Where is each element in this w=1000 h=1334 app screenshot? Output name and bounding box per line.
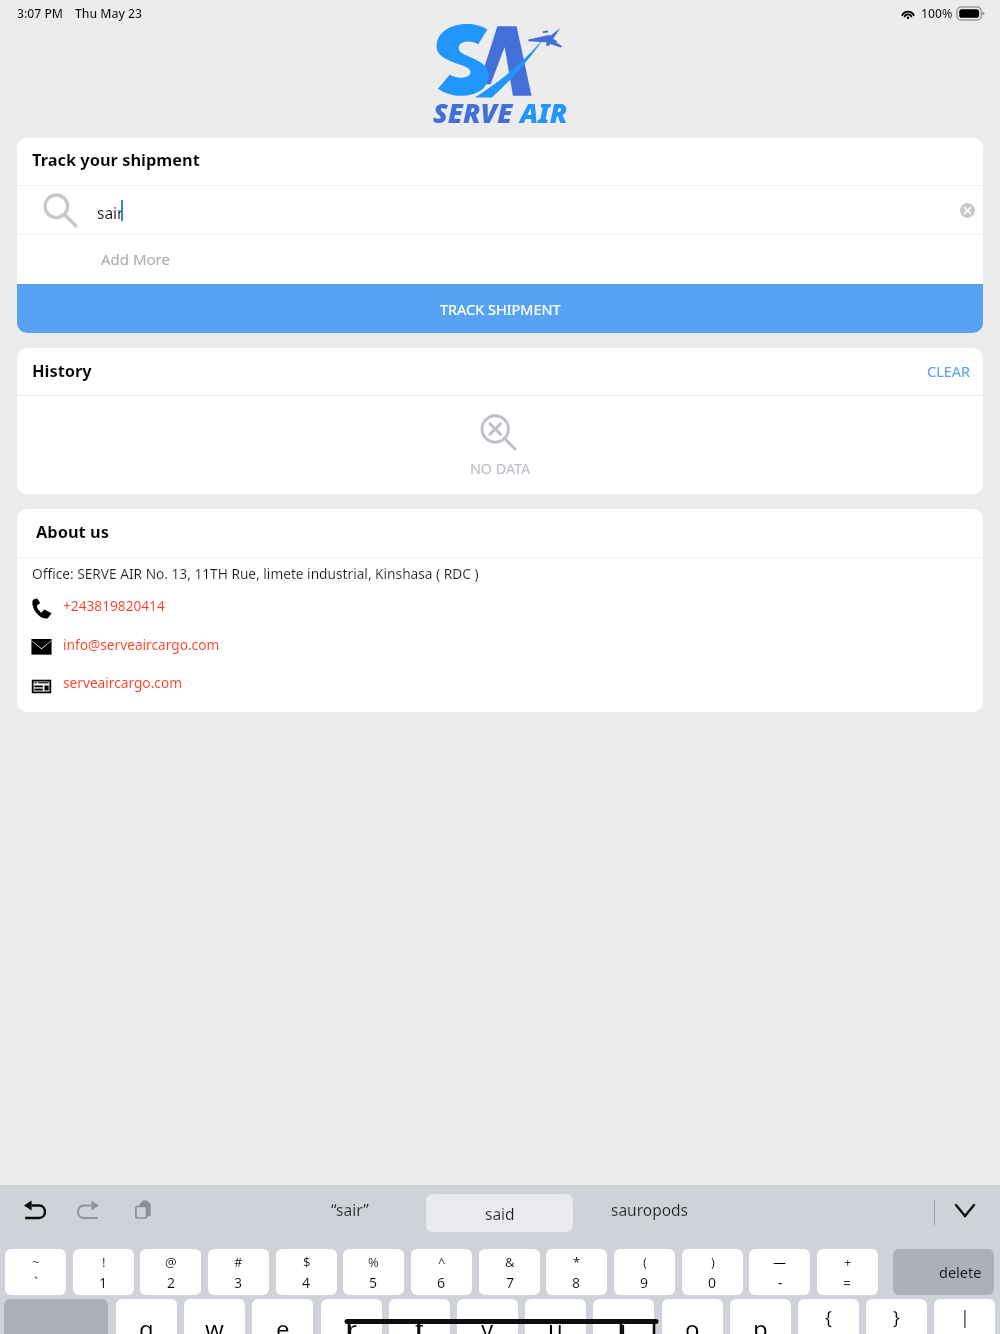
- staticText: 5: [369, 1273, 378, 1292]
- button[interactable]: !: [73, 1249, 134, 1295]
- staticText: Office: SERVE AIR No. 13, 11TH Rue, lime…: [32, 564, 479, 583]
- staticText: serveaircargo.com: [63, 673, 182, 692]
- staticText: CLEAR: [927, 361, 971, 381]
- button[interactable]: o: [662, 1299, 723, 1334]
- staticText: About us: [36, 520, 109, 542]
- staticText: AIR: [520, 94, 568, 131]
- button[interactable]: sauropods: [590, 1190, 710, 1228]
- button[interactable]: |: [934, 1299, 995, 1334]
- button[interactable]: %: [343, 1249, 404, 1295]
- button[interactable]: }: [866, 1299, 927, 1334]
- button[interactable]: “sair”: [300, 1190, 400, 1228]
- staticText: w: [205, 1312, 224, 1334]
- button[interactable]: Clear text: [955, 198, 979, 222]
- button[interactable]: $: [276, 1249, 337, 1295]
- staticText: o: [685, 1312, 700, 1334]
- staticText: u: [548, 1312, 563, 1334]
- button[interactable]: e: [252, 1299, 313, 1334]
- button[interactable]: ~: [5, 1249, 66, 1295]
- staticText: (: [643, 1253, 647, 1271]
- button[interactable]: &: [479, 1249, 540, 1295]
- staticText: p: [753, 1312, 768, 1334]
- staticText: ): [711, 1253, 715, 1271]
- button[interactable]: sair: [17, 186, 983, 234]
- staticText: i: [620, 1312, 627, 1334]
- staticText: 0: [708, 1273, 717, 1292]
- staticText: #: [234, 1253, 243, 1271]
- staticText: said: [485, 1203, 515, 1224]
- staticText: 3:07 PM: [17, 5, 64, 22]
- staticText: Thu May 23: [75, 5, 143, 22]
- staticText: 3: [234, 1273, 243, 1292]
- button[interactable]: Add More: [17, 235, 983, 284]
- staticText: 100%: [921, 5, 953, 22]
- button[interactable]: r: [321, 1299, 382, 1334]
- staticText: +243819820414: [63, 596, 165, 615]
- button[interactable]: info@serveaircargo.com: [17, 631, 983, 663]
- staticText: y: [481, 1312, 494, 1334]
- button[interactable]: CLEAR: [920, 357, 978, 385]
- staticText: `: [34, 1273, 38, 1292]
- button[interactable]: *: [546, 1249, 607, 1295]
- staticText: sair: [97, 202, 124, 223]
- button[interactable]: q: [116, 1299, 177, 1334]
- staticText: TRACK SHIPMENT: [440, 299, 561, 319]
- staticText: @: [165, 1253, 177, 1271]
- staticText: +: [844, 1253, 852, 1271]
- button[interactable]: Undo: [20, 1197, 50, 1223]
- staticText: info@serveaircargo.com: [63, 635, 220, 654]
- button[interactable]: t: [389, 1299, 450, 1334]
- button[interactable]: serveaircargo.com: [17, 670, 983, 702]
- button[interactable]: +243819820414: [17, 593, 983, 625]
- staticText: =: [843, 1273, 852, 1292]
- button[interactable]: Redo: [72, 1197, 102, 1223]
- button[interactable]: delete: [893, 1249, 994, 1295]
- button[interactable]: said: [426, 1194, 573, 1232]
- button[interactable]: Paste: [128, 1197, 158, 1223]
- button[interactable]: ^: [411, 1249, 472, 1295]
- staticText: delete: [939, 1262, 982, 1282]
- staticText: Track your shipment: [32, 148, 200, 170]
- staticText: {: [825, 1305, 832, 1330]
- staticText: -: [778, 1273, 783, 1292]
- staticText: $: [303, 1253, 311, 1271]
- staticText: NO DATA: [470, 459, 531, 478]
- staticText: ^: [438, 1253, 446, 1271]
- button[interactable]: ): [682, 1249, 743, 1295]
- button[interactable]: —: [749, 1249, 810, 1295]
- staticText: SERVE: [433, 94, 520, 131]
- staticText: }: [893, 1305, 900, 1330]
- button[interactable]: (: [614, 1249, 675, 1295]
- button[interactable]: #: [208, 1249, 269, 1295]
- staticText: History: [32, 359, 92, 381]
- staticText: sauropods: [611, 1199, 689, 1220]
- staticText: 8: [572, 1273, 581, 1292]
- staticText: !: [102, 1253, 106, 1271]
- staticText: %: [368, 1253, 379, 1271]
- button[interactable]: i: [593, 1299, 654, 1334]
- staticText: q: [139, 1312, 154, 1334]
- button[interactable]: @: [140, 1249, 201, 1295]
- button[interactable]: y: [457, 1299, 518, 1334]
- staticText: *: [573, 1253, 581, 1271]
- staticText: —: [773, 1253, 787, 1271]
- staticText: e: [276, 1312, 290, 1334]
- staticText: 6: [437, 1273, 446, 1292]
- staticText: t: [415, 1312, 424, 1334]
- button[interactable]: w: [184, 1299, 245, 1334]
- staticText: 2: [167, 1273, 176, 1292]
- staticText: 9: [640, 1273, 649, 1292]
- button[interactable]: {: [798, 1299, 859, 1334]
- staticText: 7: [506, 1273, 515, 1292]
- staticText: ~: [32, 1253, 40, 1271]
- button[interactable]: Hide keyboard: [948, 1195, 981, 1225]
- staticText: Add More: [101, 249, 170, 269]
- button[interactable]: TRACK SHIPMENT: [17, 284, 983, 333]
- staticText: r: [347, 1312, 357, 1334]
- staticText: 1: [99, 1273, 108, 1292]
- staticText: 4: [302, 1273, 311, 1292]
- button[interactable]: p: [730, 1299, 791, 1334]
- button[interactable]: +: [817, 1249, 878, 1295]
- button[interactable]: u: [525, 1299, 586, 1334]
